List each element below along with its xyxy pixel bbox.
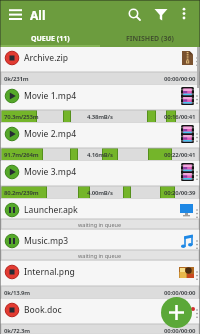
button[interactable] [125,4,145,26]
staticText: Movie 2.mp4 [24,128,77,140]
staticText: 80.2m/239m [4,189,39,197]
staticText: Launcher.apk [24,204,78,216]
staticText: 4.16mB/s [87,151,113,159]
staticText: 0k/13.9m [4,289,30,297]
staticText: 00:00/00:00 [164,327,196,334]
staticText: All [30,7,46,23]
button[interactable]: Book.doc [0,299,200,334]
button[interactable]: FINISHED (36) [100,30,200,47]
staticText: 00:20/00:39 [164,189,196,197]
staticText: 0k/72.3m [4,327,30,334]
button[interactable] [6,6,26,24]
button[interactable] [161,297,192,328]
button[interactable] [151,4,171,26]
staticText: 4.38mB/s [87,113,113,121]
staticText: 00:00/00:00 [164,75,196,83]
staticText: 00:00/00:00 [164,289,196,297]
staticText: 00:22/00:41 [164,151,196,159]
staticText: 4.00mB/s [87,189,113,197]
button[interactable] [175,4,193,26]
button[interactable]: QUEUE (11) [0,30,100,47]
button[interactable]: Archive.zip [0,47,200,85]
staticText: Internal.png [24,266,75,278]
staticText: Movie 1.mp4 [24,90,77,102]
staticText: Music.mp3 [24,235,69,247]
button[interactable]: Music.mp3 [0,230,200,261]
staticText: Movie 3.mp4 [24,166,77,178]
button[interactable]: Movie 2.mp4 [0,123,200,161]
button[interactable]: Movie 1.mp4 [0,85,200,123]
staticText: QUEUE (11) [31,34,70,44]
staticText: 91.7m/264m [4,151,39,159]
button[interactable]: Launcher.apk [0,199,200,230]
staticText: waiting in queue [78,221,122,228]
button[interactable]: Internal.png [0,261,200,299]
staticText: Archive.zip [24,52,69,64]
staticText: FINISHED (36) [126,34,174,44]
staticText: 00:16/00:41 [164,113,196,121]
button[interactable]: Movie 3.mp4 [0,161,200,199]
staticText: 0k/231m [4,75,29,83]
staticText: 70.3m/253m [4,113,39,121]
staticText: Book.doc [24,304,62,316]
staticText: waiting in queue [78,252,122,259]
